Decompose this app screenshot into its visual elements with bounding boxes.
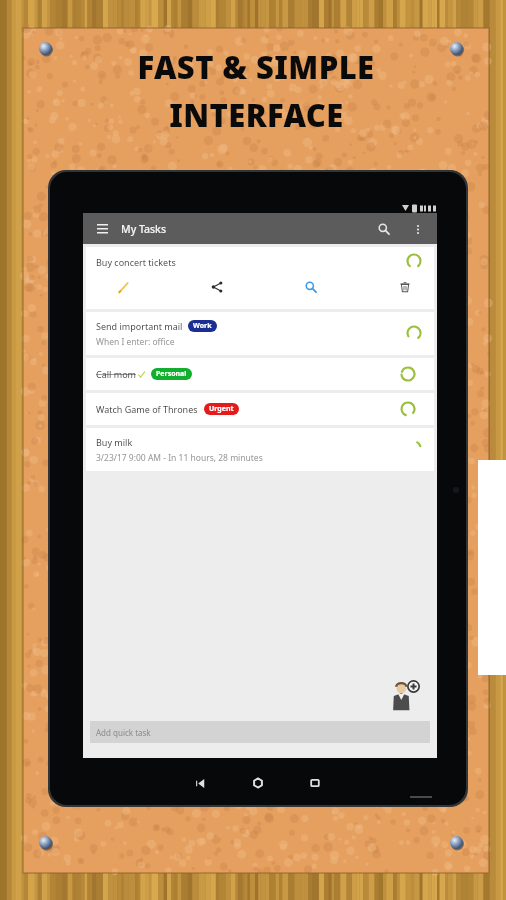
button[interactable]: Edit bbox=[108, 276, 138, 298]
button[interactable]: Call mom bbox=[86, 358, 434, 390]
staticText: Send important mail bbox=[96, 320, 183, 332]
staticText: 3/23/17 9:00 AM - In 11 hours, 28 minute… bbox=[96, 452, 263, 464]
staticText: FAST & SIMPLE bbox=[137, 46, 375, 88]
staticText: Buy milk bbox=[96, 436, 133, 448]
button[interactable]: Personal bbox=[156, 369, 187, 379]
button[interactable]: Open navigation menu bbox=[89, 213, 115, 244]
button[interactable]: Search bbox=[371, 213, 397, 244]
button[interactable]: Add quick task bbox=[90, 721, 430, 743]
button[interactable]: Delete bbox=[390, 276, 420, 298]
button[interactable]: Share bbox=[202, 276, 232, 298]
staticText: Watch Game of Thrones bbox=[96, 403, 198, 415]
button[interactable]: Send important mail bbox=[86, 312, 434, 355]
button[interactable]: Add person bbox=[387, 679, 421, 713]
button[interactable]: Urgent bbox=[209, 404, 234, 414]
staticText: Urgent bbox=[209, 404, 234, 414]
staticText: Personal bbox=[156, 369, 187, 379]
staticText: My Tasks bbox=[121, 222, 167, 236]
button[interactable]: Watch Game of Thrones bbox=[86, 393, 434, 425]
staticText: Add quick task bbox=[96, 727, 151, 738]
button[interactable]: More options bbox=[407, 213, 429, 244]
button[interactable]: Home bbox=[243, 768, 273, 798]
button[interactable]: Recents bbox=[300, 768, 330, 798]
button[interactable]: Back bbox=[186, 768, 216, 798]
staticText: When I enter: office bbox=[96, 336, 175, 348]
staticText: Work bbox=[193, 321, 212, 331]
staticText: INTERFACE bbox=[169, 94, 344, 136]
button[interactable]: Buy concert tickets bbox=[86, 247, 434, 309]
button[interactable]: Search bbox=[296, 276, 326, 298]
button[interactable]: Buy milk bbox=[86, 428, 434, 471]
staticText: Call mom bbox=[96, 368, 136, 380]
staticText: Buy concert tickets bbox=[96, 256, 176, 268]
button[interactable]: Work bbox=[193, 321, 212, 331]
